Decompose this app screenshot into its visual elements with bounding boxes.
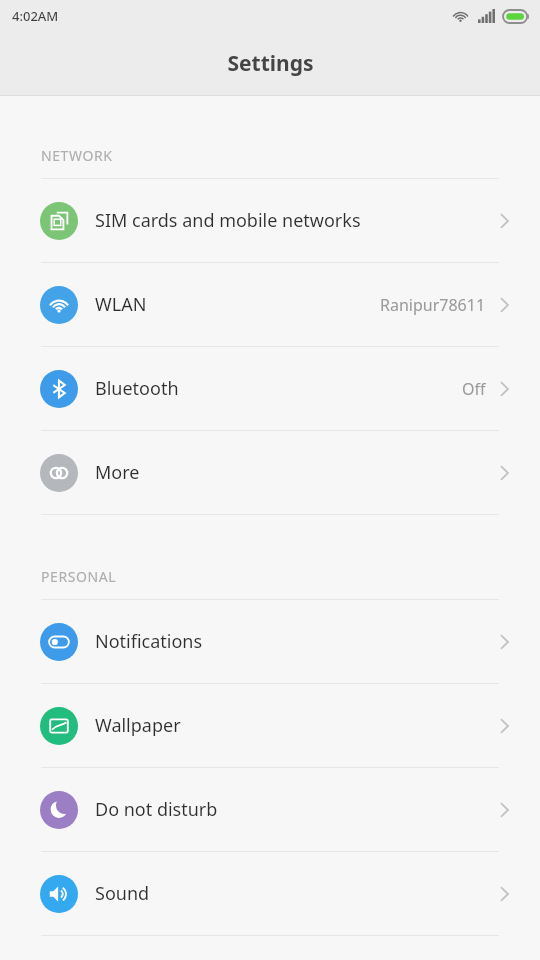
- staticText: WLAN: [95, 292, 380, 317]
- button[interactable]: Do not disturb: [0, 768, 540, 851]
- staticText: 4:02AM: [12, 7, 59, 25]
- staticText: Off: [462, 378, 486, 400]
- button[interactable]: SIM cards and mobile networks: [0, 179, 540, 262]
- staticText: NETWORK: [41, 146, 113, 165]
- button[interactable]: Wallpaper: [0, 684, 540, 767]
- staticText: Notifications: [95, 629, 499, 654]
- staticText: Wallpaper: [95, 713, 499, 738]
- staticText: SIM cards and mobile networks: [95, 208, 499, 233]
- staticText: PERSONAL: [41, 567, 117, 586]
- staticText: Sound: [95, 881, 499, 906]
- staticText: More: [95, 460, 499, 485]
- staticText: Ranipur78611: [380, 294, 486, 316]
- button[interactable]: WLAN: [0, 263, 540, 346]
- staticText: Do not disturb: [95, 797, 499, 822]
- button[interactable]: Notifications: [0, 600, 540, 683]
- button[interactable]: Sound: [0, 852, 540, 935]
- button[interactable]: More: [0, 431, 540, 514]
- staticText: Bluetooth: [95, 376, 462, 401]
- staticText: Settings: [227, 49, 314, 78]
- button[interactable]: Bluetooth: [0, 347, 540, 430]
